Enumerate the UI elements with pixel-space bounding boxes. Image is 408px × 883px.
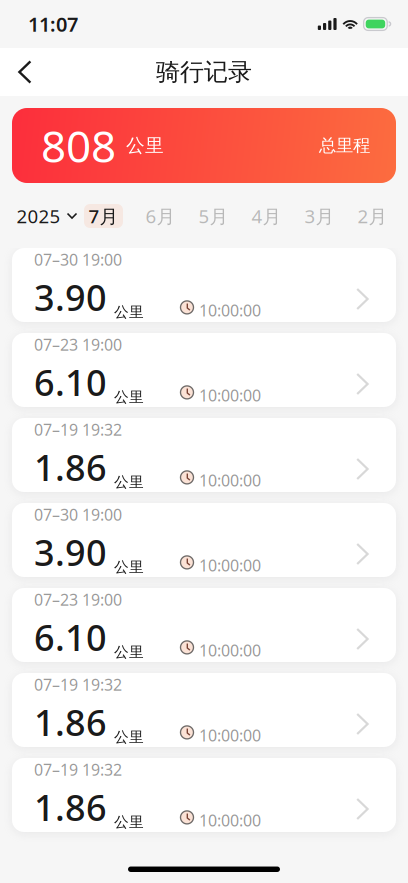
staticText: 07–19 19:32 [34,419,122,440]
button[interactable]: Back [0,48,46,96]
button[interactable]: 7月 [84,204,123,228]
staticText: 808 [41,116,116,175]
button[interactable]: 2025 [10,201,84,231]
staticText: 7月 [88,204,118,228]
button[interactable]: 07–30 19:00 [12,503,396,577]
staticText: 07–30 19:00 [34,504,122,525]
staticText: 3月 [304,204,334,228]
staticText: 07–23 19:00 [34,334,122,355]
staticText: 骑行记录 [156,57,252,87]
staticText: 10:00:00 [199,810,261,831]
staticText: 10:00:00 [199,555,261,576]
staticText: 10:00:00 [199,300,261,321]
staticText: 07–23 19:00 [34,589,122,610]
staticText: 5月 [198,204,228,228]
staticText: 公里 [114,728,144,746]
staticText: 10:00:00 [199,470,261,491]
staticText: 公里 [114,558,144,576]
staticText: 1.86 [34,698,107,746]
button[interactable]: 07–19 19:32 [12,418,396,492]
staticText: 2月 [357,204,387,228]
button[interactable]: 07–23 19:00 [12,333,396,407]
staticText: 公里 [114,388,144,406]
staticText: 10:00:00 [199,640,261,661]
staticText: 6.10 [34,358,107,406]
button[interactable]: 4月 [240,204,293,228]
staticText: 公里 [114,473,144,491]
button[interactable]: 5月 [187,204,240,228]
staticText: 公里 [114,303,144,321]
staticText: 4月 [251,204,281,228]
staticText: 3.90 [34,528,107,576]
button[interactable]: 07–30 19:00 [12,248,396,322]
button[interactable]: 07–19 19:32 [12,673,396,747]
staticText: 公里 [114,643,144,661]
staticText: 2025 [16,204,60,228]
staticText: 1.86 [34,443,107,491]
staticText: 1.86 [34,783,107,831]
staticText: 6.10 [34,613,107,661]
staticText: 公里 [114,813,144,831]
button[interactable]: 3月 [293,204,346,228]
button[interactable]: 07–19 19:32 [12,758,396,832]
staticText: 10:00:00 [199,385,261,406]
staticText: 07–19 19:32 [34,759,122,780]
button[interactable]: 2月 [346,204,399,228]
staticText: 6月 [145,204,175,228]
staticText: 总里程 [319,135,370,156]
staticText: 3.90 [34,273,107,321]
staticText: 公里 [126,134,164,157]
button[interactable]: 07–23 19:00 [12,588,396,662]
staticText: 07–30 19:00 [34,249,122,270]
staticText: 10:00:00 [199,725,261,746]
button[interactable]: 6月 [134,204,187,228]
staticText: 07–19 19:32 [34,674,122,695]
staticText: 11:07 [28,11,78,37]
